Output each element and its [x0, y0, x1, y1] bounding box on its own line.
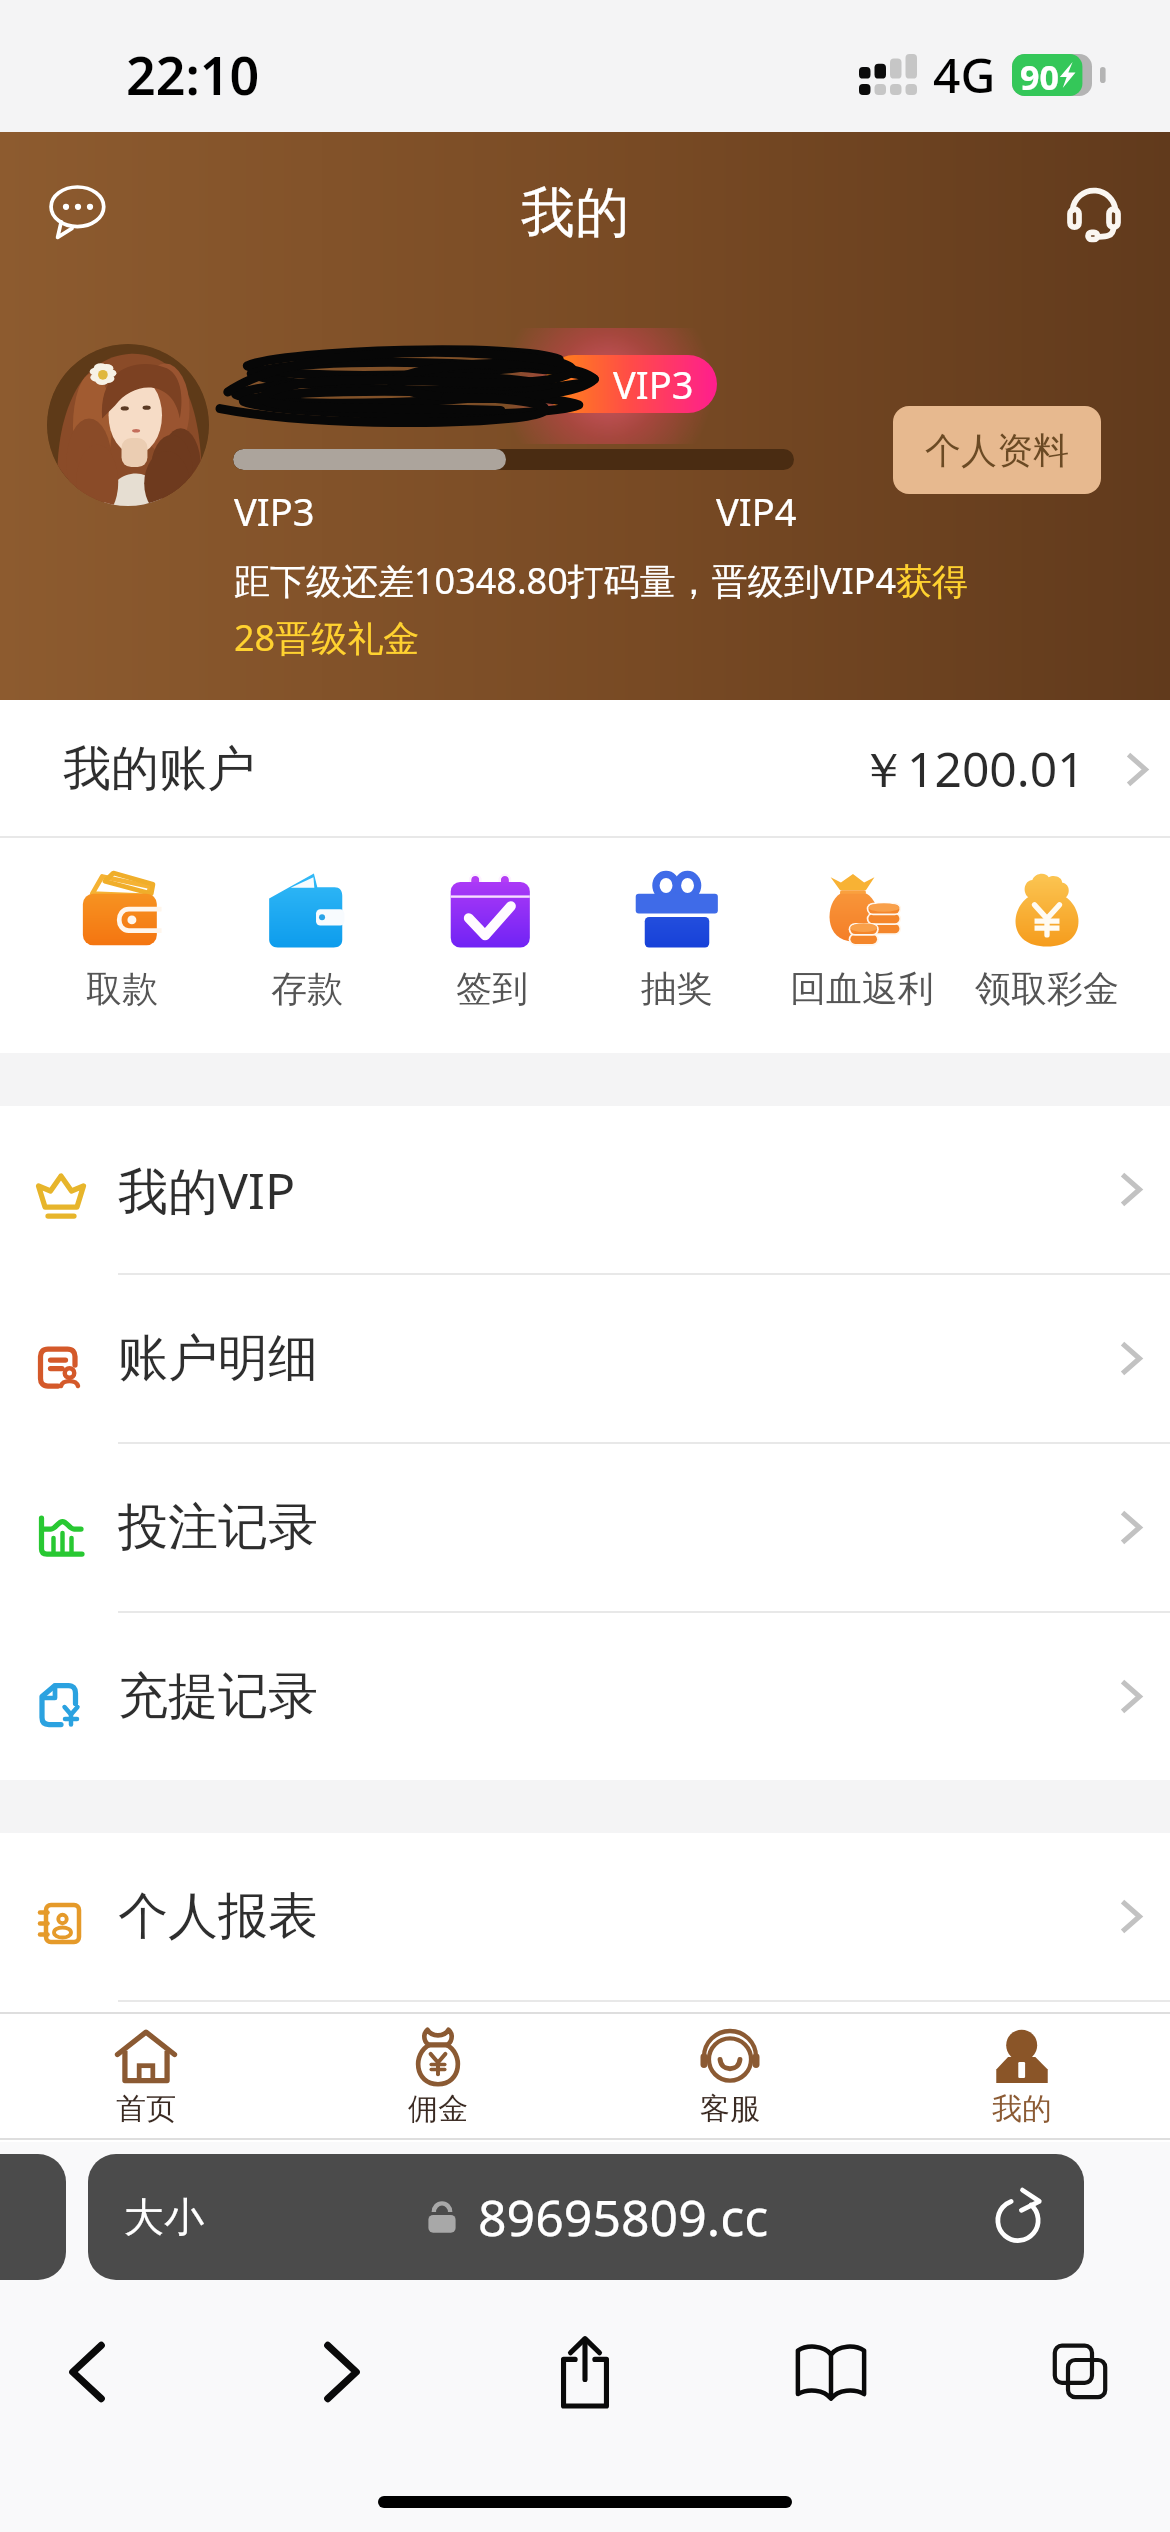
staticText: 抽奖: [641, 966, 713, 1011]
staticText: 我的账户: [63, 739, 255, 799]
button[interactable]: 签到: [400, 850, 584, 1040]
button[interactable]: 充提记录: [0, 1613, 1170, 1780]
staticText: 89695809.cc: [478, 2183, 769, 2251]
staticText: 佣金: [408, 2090, 468, 2128]
staticText: 22:10: [126, 39, 260, 110]
button[interactable]: Back: [37, 2302, 137, 2442]
button[interactable]: Share: [535, 2302, 635, 2442]
staticText: 我的VIP: [118, 1156, 296, 1224]
staticText: 签到: [456, 966, 528, 1011]
button[interactable]: 抽奖: [585, 850, 769, 1040]
button[interactable]: 客服: [584, 2014, 876, 2138]
staticText: 存款: [271, 966, 343, 1011]
button[interactable]: 大小: [88, 2154, 1084, 2280]
staticText: VIP3: [234, 485, 315, 537]
button[interactable]: 回血返利: [770, 850, 954, 1040]
staticText: ￥1200.01: [859, 736, 1085, 802]
staticText: 大小: [124, 2192, 204, 2242]
staticText: 个人资料: [925, 428, 1069, 473]
staticText: 回血返利: [790, 966, 934, 1011]
button[interactable]: 存款: [215, 850, 399, 1040]
staticText: 领取彩金: [975, 966, 1119, 1011]
button[interactable]: Bookmarks: [781, 2302, 881, 2442]
button[interactable]: 取款: [30, 850, 214, 1040]
button[interactable]: 个人资料: [893, 406, 1101, 494]
button[interactable]: Customer service: [1052, 169, 1136, 253]
staticText: 个人报表: [118, 1885, 318, 1948]
staticText: VIP3: [613, 358, 694, 410]
button[interactable]: Tabs: [1030, 2302, 1130, 2442]
button[interactable]: 投注记录: [0, 1444, 1170, 1613]
button[interactable]: 我的: [876, 2014, 1168, 2138]
staticText: 4G: [933, 42, 996, 107]
staticText: 账户明细: [118, 1327, 318, 1390]
staticText: 取款: [86, 966, 158, 1011]
staticText: 投注记录: [118, 1496, 318, 1559]
button[interactable]: Profile avatar: [47, 344, 209, 506]
staticText: VIP4: [716, 485, 797, 537]
button[interactable]: 领取彩金: [955, 850, 1139, 1040]
staticText: 客服: [700, 2090, 760, 2128]
staticText: 90: [1020, 54, 1059, 96]
button[interactable]: 佣金: [292, 2014, 584, 2138]
button[interactable]: Forward: [292, 2302, 392, 2442]
button[interactable]: Messages: [36, 169, 120, 253]
staticText: 距下级还差10348.80打码量，晋级到VIP4获得28晋级礼金: [234, 556, 976, 662]
button[interactable]: 我的账户: [0, 700, 1170, 838]
staticText: 我的: [521, 179, 629, 247]
button[interactable]: 我的VIP: [0, 1106, 1170, 1275]
staticText: 我的: [992, 2090, 1052, 2128]
staticText: 首页: [116, 2090, 176, 2128]
staticText: 充提记录: [118, 1665, 318, 1728]
button[interactable]: 账户明细: [0, 1275, 1170, 1444]
button[interactable]: 个人报表: [0, 1833, 1170, 2002]
button[interactable]: 首页: [0, 2014, 292, 2138]
